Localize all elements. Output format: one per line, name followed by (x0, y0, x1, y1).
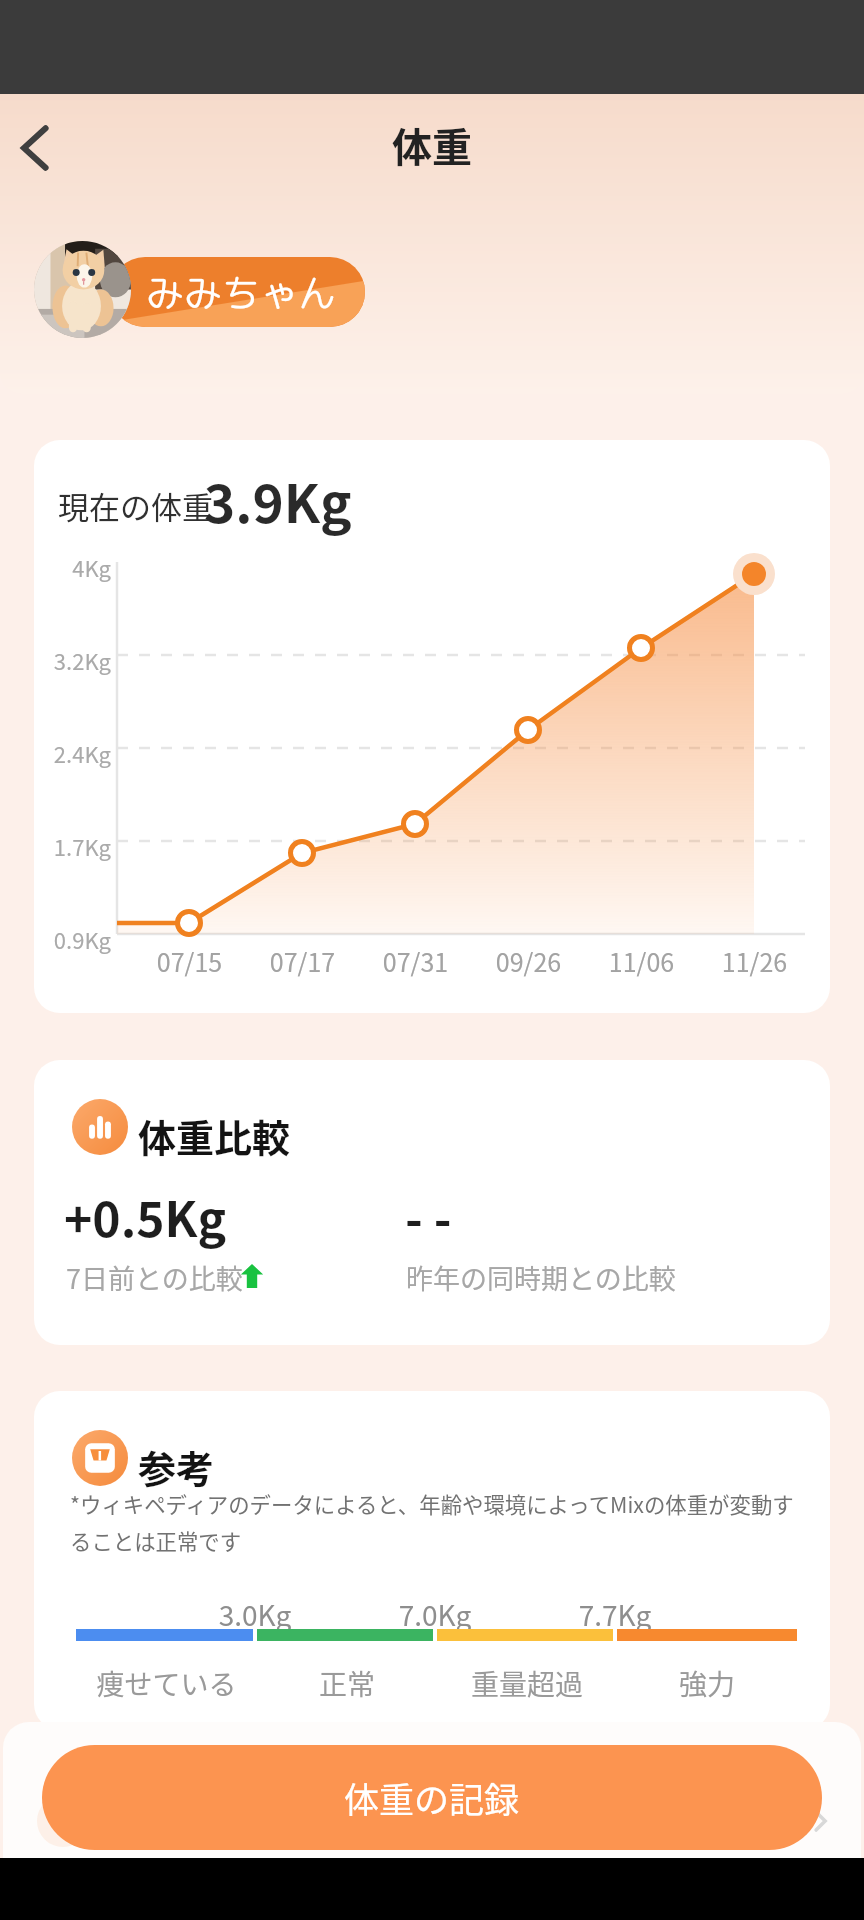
staticText: 7.0Kg (360, 1594, 510, 1635)
staticText: 4Kg (34, 551, 111, 583)
staticText: みみちゃん (146, 266, 337, 319)
button[interactable]: 体重の記録 (42, 1745, 822, 1850)
staticText: 昨年の同時期との比較 (406, 1258, 676, 1297)
staticText: 7.7Kg (540, 1594, 690, 1635)
staticText: 11/06 (585, 943, 698, 979)
staticText: 0.9Kg (34, 923, 111, 955)
staticText: 1.7Kg (34, 830, 111, 862)
staticText: 2.4Kg (34, 737, 111, 769)
button[interactable]: Back (18, 125, 64, 171)
button[interactable]: 体重 (37, 1784, 833, 1858)
staticText: - - (405, 1181, 452, 1251)
staticText: 体重の記録 (344, 1772, 520, 1823)
staticText: 3.2Kg (34, 644, 111, 676)
staticText: 痩せている (76, 1663, 257, 1704)
staticText: 09/26 (472, 943, 585, 979)
staticText: 体重 (392, 116, 472, 174)
staticText: 体重比較 (138, 1108, 291, 1163)
staticText: 強力 (617, 1663, 797, 1704)
staticText: 重量超過 (437, 1663, 617, 1704)
staticText: 現在の体重 (58, 483, 213, 528)
staticText: 3.9Kg (204, 462, 352, 539)
staticText: 7日前との比較 (66, 1258, 243, 1297)
staticText: 07/15 (133, 943, 246, 979)
staticText: 正常 (257, 1663, 437, 1704)
staticText: 参考 (138, 1439, 215, 1494)
staticText: +0.5Kg (64, 1181, 227, 1251)
staticText: 07/17 (246, 943, 359, 979)
staticText: 11/26 (698, 943, 811, 979)
staticText: 07/31 (359, 943, 472, 979)
button[interactable]: みみちゃん (110, 257, 365, 327)
staticText: *ウィキペディアのデータによると、年齢や環境によってMixの体重が変動す ること… (70, 1488, 794, 1557)
staticText: 3.0Kg (180, 1594, 330, 1635)
